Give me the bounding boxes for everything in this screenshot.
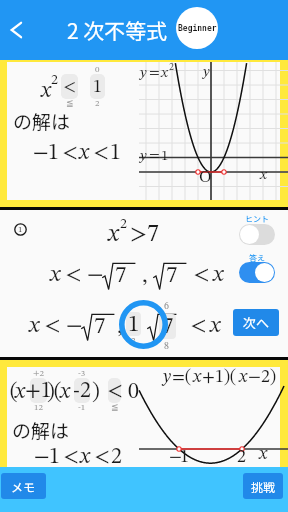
staticText: 2 xyxy=(111,446,122,468)
staticText: 次へ xyxy=(243,313,270,332)
staticText: = xyxy=(149,149,160,164)
staticText: x xyxy=(260,168,267,183)
staticText: < xyxy=(65,263,82,286)
staticText: 挑戦 xyxy=(251,478,276,495)
staticText: 1 xyxy=(18,225,23,234)
staticText: 2 xyxy=(237,448,246,466)
staticText: − xyxy=(33,142,49,164)
staticText: −2) xyxy=(248,368,277,386)
staticText: ≦ xyxy=(111,402,119,412)
staticText: -1 xyxy=(78,403,86,412)
staticText: =( xyxy=(172,368,192,386)
staticText: − xyxy=(66,314,83,337)
staticText: < xyxy=(94,446,110,468)
staticText: < xyxy=(107,380,123,402)
staticText: の解は xyxy=(12,416,70,444)
staticText: − xyxy=(169,448,182,466)
staticText: 1 xyxy=(128,313,140,336)
staticText: x xyxy=(15,381,25,403)
staticText: O xyxy=(199,169,212,186)
staticText: 7 xyxy=(94,315,106,338)
staticText: y xyxy=(140,66,147,81)
staticText: ( xyxy=(54,381,62,403)
button[interactable]: Beginner xyxy=(176,7,218,49)
staticText: = xyxy=(149,66,160,81)
staticText: , xyxy=(117,315,123,338)
button[interactable]: 挑戦 xyxy=(243,473,283,499)
staticText: − xyxy=(34,446,50,468)
staticText: 7 xyxy=(115,264,127,287)
staticText: x xyxy=(239,368,248,386)
staticText: 1 xyxy=(180,448,189,466)
staticText: 12 xyxy=(34,403,43,412)
staticText: メモ xyxy=(11,478,36,495)
staticText: , xyxy=(142,264,148,287)
staticText: 1 xyxy=(161,149,169,164)
staticText: 2 xyxy=(169,62,174,72)
button[interactable]: メモ xyxy=(1,473,46,499)
staticText: x xyxy=(60,381,70,403)
staticText: Beginner xyxy=(178,24,217,33)
staticText: ) xyxy=(47,381,55,403)
staticText: 2 xyxy=(120,217,127,231)
staticText: x xyxy=(80,446,90,468)
staticText: < xyxy=(44,314,61,337)
staticText: x xyxy=(108,223,119,247)
staticText: 0 xyxy=(128,381,139,403)
staticText: > xyxy=(130,223,147,247)
staticText: 2 次不等式 xyxy=(67,15,168,45)
staticText: +1)( xyxy=(202,368,237,386)
staticText: ≦ xyxy=(66,98,74,108)
staticText: x xyxy=(210,314,221,337)
staticText: 7 xyxy=(162,315,174,338)
staticText: < xyxy=(93,142,109,164)
staticText: < xyxy=(63,78,76,96)
staticText: 1 xyxy=(48,142,59,164)
staticText: x xyxy=(41,80,51,102)
staticText: 7 xyxy=(166,264,178,287)
staticText: ( xyxy=(10,381,18,403)
staticText: x xyxy=(259,445,268,463)
staticText: +1 xyxy=(25,380,52,402)
staticText: < xyxy=(62,142,78,164)
staticText: +2 xyxy=(33,369,44,378)
staticText: 2 xyxy=(95,99,100,108)
staticText: ) xyxy=(92,381,100,403)
button[interactable] xyxy=(239,224,275,245)
staticText: 8 xyxy=(164,341,169,351)
staticText: y xyxy=(140,149,147,164)
staticText: x xyxy=(79,142,89,164)
staticText: x xyxy=(29,314,40,337)
staticText: y xyxy=(203,65,210,80)
staticText: の解は xyxy=(13,107,71,135)
staticText: < xyxy=(190,314,207,337)
staticText: 0 xyxy=(95,65,100,74)
staticText: < xyxy=(193,263,210,286)
staticText: 7 xyxy=(147,223,159,247)
staticText: 1 xyxy=(93,78,102,96)
staticText: 2 xyxy=(131,336,136,345)
staticText: < xyxy=(63,446,79,468)
staticText: -2 xyxy=(73,380,91,402)
staticText: ヒント xyxy=(245,213,269,225)
staticText: x xyxy=(213,263,224,286)
button[interactable]: 次へ xyxy=(233,309,279,336)
staticText: x xyxy=(193,368,202,386)
staticText: 2 xyxy=(51,73,58,87)
staticText: x xyxy=(161,66,168,81)
staticText: 答え xyxy=(249,252,265,264)
staticText: − xyxy=(87,263,104,286)
staticText: -3 xyxy=(78,369,86,378)
button[interactable]: Back xyxy=(0,12,34,48)
staticText: y xyxy=(163,368,172,386)
staticText: 6 xyxy=(164,301,169,311)
staticText: 1 xyxy=(110,142,121,164)
staticText: 1 xyxy=(49,446,60,468)
staticText: x xyxy=(50,263,61,286)
button[interactable] xyxy=(239,262,275,283)
